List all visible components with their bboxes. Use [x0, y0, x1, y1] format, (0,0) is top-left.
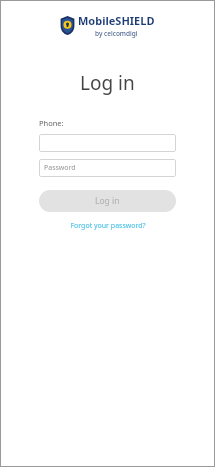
- staticText: Password: [44, 163, 76, 173]
- button[interactable]: [39, 134, 176, 152]
- staticText: Phone:: [39, 118, 64, 128]
- staticText: by celcomdigi: [95, 29, 138, 38]
- staticText: Log in: [95, 195, 120, 207]
- button[interactable]: Password: [39, 159, 176, 177]
- other: MobileSHIELD logo: [60, 16, 75, 35]
- button[interactable]: Forgot your password?: [39, 221, 176, 231]
- button[interactable]: Log in: [39, 190, 176, 212]
- staticText: Forgot your password?: [70, 221, 146, 231]
- staticText: Log in: [80, 70, 135, 96]
- button[interactable]: MobileSHIELD logo: [60, 13, 155, 38]
- staticText: MobileSHIELD: [78, 13, 155, 28]
